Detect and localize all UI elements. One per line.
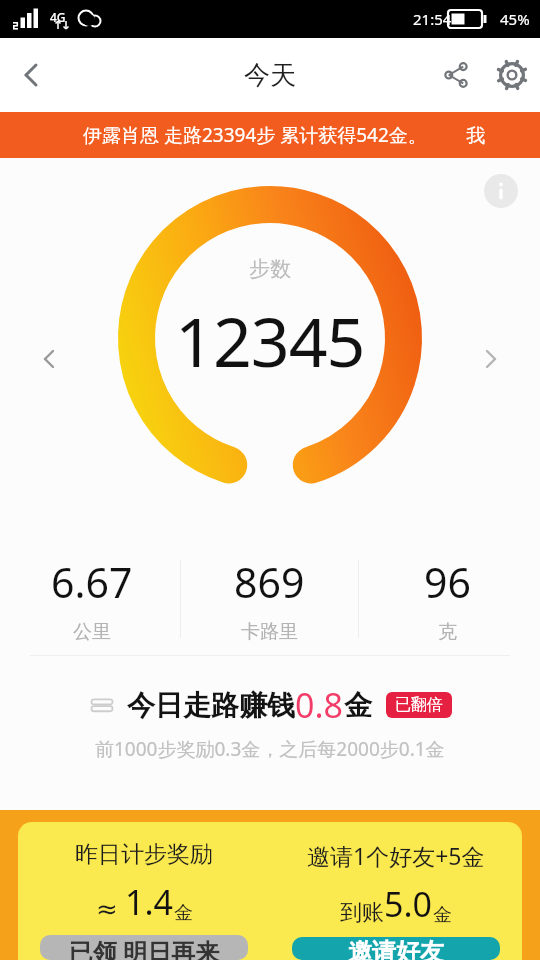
button[interactable]: 96 — [359, 543, 536, 655]
staticText: 邀请1个好友+5金 — [307, 840, 485, 871]
button[interactable]: 869 — [181, 543, 358, 655]
staticText: 昨日计步奖励 — [75, 840, 213, 869]
button[interactable]: 已领 明日再来 — [40, 935, 248, 960]
button[interactable]: 已翻倍 — [395, 695, 443, 715]
staticText: 0.8 — [295, 682, 344, 728]
button[interactable]: 今日走路赚钱 — [0, 656, 540, 788]
staticText: 克 — [438, 620, 457, 644]
staticText: 1.4 — [125, 879, 174, 925]
staticText: 6.67 — [51, 554, 133, 610]
staticText: 45% — [500, 9, 530, 29]
staticText: 公里 — [73, 620, 111, 644]
staticText: 前1000步奖励0.3金，之后每2000步0.1金 — [95, 736, 445, 762]
staticText: 4G — [50, 9, 66, 25]
staticText: 已领 明日再来 — [69, 935, 220, 960]
staticText: 96 — [424, 554, 471, 610]
staticText: 今日走路赚钱 — [127, 688, 295, 723]
staticText: 12345 — [175, 294, 365, 387]
staticText: 869 — [234, 554, 305, 610]
staticText: 21:54 — [413, 9, 452, 29]
staticText: 步数 — [249, 256, 291, 282]
button[interactable]: 邀请好友 — [292, 937, 500, 960]
staticText: 伊露肖恩 走路23394步 累计获得542金。 我 — [83, 122, 486, 148]
button[interactable]: Settings — [484, 47, 540, 103]
staticText: 金 — [433, 903, 452, 927]
button[interactable]: Info — [484, 174, 518, 208]
button[interactable]: 6.67 — [4, 543, 180, 655]
button[interactable]: Previous day — [32, 342, 66, 376]
staticText: 金 — [174, 901, 193, 925]
staticText: 已翻倍 — [395, 695, 443, 715]
button[interactable]: Back — [0, 38, 62, 112]
staticText: 金 — [344, 688, 372, 723]
staticText: 卡路里 — [241, 620, 298, 644]
staticText: ≈ — [96, 890, 125, 925]
staticText: 邀请好友 — [348, 937, 444, 960]
staticText: 今天 — [244, 59, 296, 92]
button[interactable]: 伊露肖恩 走路23394步 累计获得542金。 我 — [0, 112, 540, 158]
button[interactable]: 昨日计步奖励 — [18, 822, 270, 960]
button[interactable]: Next day — [474, 342, 508, 376]
staticText: 到账 — [340, 899, 384, 927]
button[interactable]: Share — [428, 47, 484, 103]
button[interactable]: 邀请1个好友+5金 — [270, 822, 522, 960]
button[interactable]: Steps progress — [118, 186, 422, 490]
staticText: 5.0 — [384, 881, 433, 927]
